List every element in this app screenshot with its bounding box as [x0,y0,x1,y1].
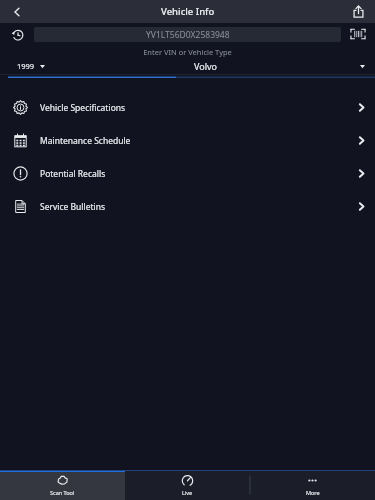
button[interactable]: Vehicle Specifications [0,91,375,124]
staticText: Service Bulletins [40,201,106,213]
button[interactable]: YV1LT56D0X2583948 [34,27,341,42]
staticText: 1999 [17,61,35,71]
staticText: More [306,489,320,496]
staticText: Vehicle Specifications [40,102,126,114]
button[interactable]: 1999 [0,58,62,74]
button[interactable]: Live [125,470,250,500]
button[interactable]: Scan Tool [0,470,125,500]
button[interactable]: Scan barcode [341,23,375,45]
button[interactable]: Share [341,0,375,23]
staticText: Potential Recalls [40,168,106,180]
button[interactable]: Maintenance Schedule [0,124,375,157]
button[interactable]: Select make [349,58,375,74]
staticText: Scan Tool [50,489,75,496]
button[interactable]: VIN history [0,23,34,45]
staticText: Maintenance Schedule [40,135,131,147]
staticText: Live [182,489,193,496]
staticText: Vehicle Info [161,5,215,18]
button[interactable]: Potential Recalls [0,157,375,190]
button[interactable]: Volvo [62,58,349,74]
button[interactable]: More [250,470,375,500]
button[interactable]: Back [0,0,34,23]
staticText: YV1LT56D0X2583948 [146,29,230,41]
button[interactable]: Service Bulletins [0,190,375,223]
staticText: Enter VIN or Vehicle Type [143,47,232,57]
staticText: Volvo [194,60,218,72]
